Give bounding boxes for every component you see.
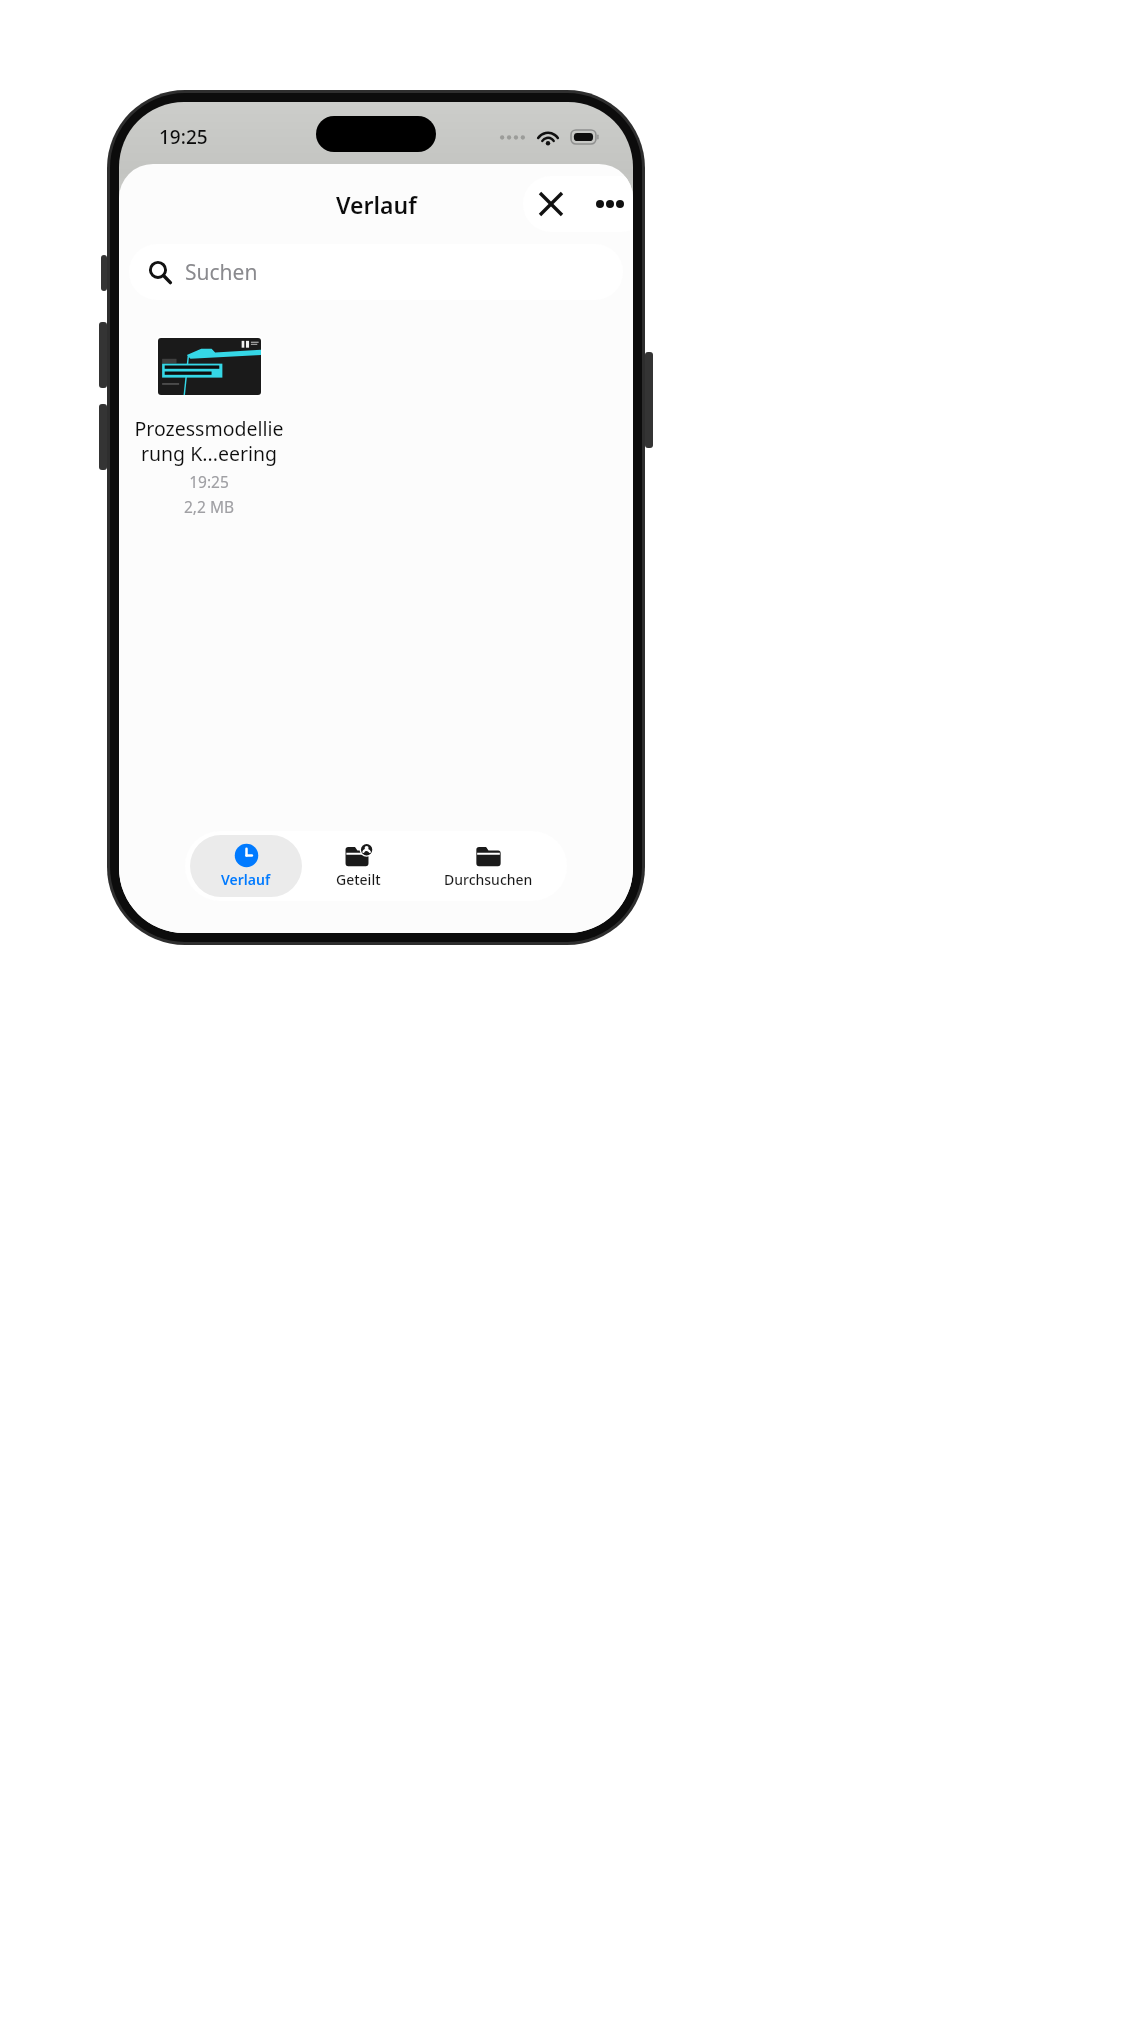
staticText: Durchsuchen: [444, 870, 533, 889]
staticText: Suchen: [185, 258, 258, 287]
staticText: Geteilt: [336, 870, 381, 889]
staticText: 19:25: [159, 124, 208, 150]
button[interactable]: Durchsuchen: [415, 835, 562, 897]
button[interactable]: Mehr: [579, 176, 633, 232]
button[interactable]: Prozessmodellie rung K...eering: [129, 330, 289, 517]
button[interactable]: Geteilt: [302, 835, 415, 897]
button[interactable]: Suchen: [129, 244, 623, 300]
staticText: 19:25: [129, 471, 289, 492]
staticText: Prozessmodellie rung K...eering: [129, 415, 289, 466]
button[interactable]: Verlauf: [190, 835, 302, 897]
staticText: Verlauf: [221, 870, 271, 889]
button[interactable]: Schließen: [523, 176, 579, 232]
staticText: 2,2 MB: [129, 496, 289, 517]
staticText: Verlauf: [336, 189, 417, 220]
